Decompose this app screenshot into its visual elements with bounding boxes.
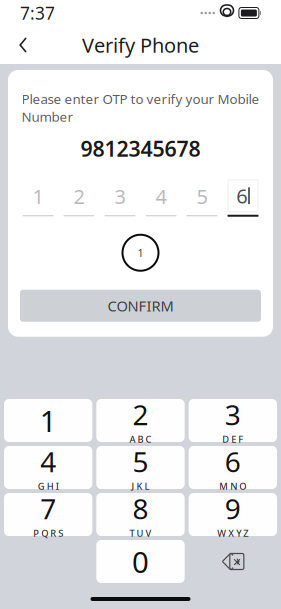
staticText: 3 [225, 396, 241, 433]
staticText: Verify Phone [82, 32, 199, 58]
staticText: 6 [225, 443, 241, 480]
staticText: J K L [131, 480, 149, 492]
staticText: 1 [137, 246, 143, 260]
button[interactable]: Back [12, 30, 34, 60]
staticText: 4 [155, 183, 166, 210]
staticText: D E F [222, 433, 243, 445]
button[interactable]: 0 [96, 540, 185, 583]
staticText: A B C [129, 433, 151, 445]
button[interactable]: 5 [96, 446, 185, 489]
staticText: T U V [129, 527, 151, 539]
button[interactable]: 7 [4, 493, 92, 536]
button[interactable]: CONFIRM [20, 290, 261, 322]
button[interactable]: Delete [189, 540, 277, 583]
staticText: 2 [132, 396, 148, 433]
button[interactable]: 4 [4, 446, 92, 489]
staticText: 5 [132, 443, 148, 480]
staticText: M N O [219, 480, 246, 492]
staticText: × [233, 552, 241, 571]
staticText: G H I [38, 480, 59, 492]
button[interactable]: 9 [189, 493, 277, 536]
button[interactable]: 2 [96, 399, 185, 442]
staticText: CONFIRM [107, 296, 173, 315]
staticText: 3 [114, 183, 125, 210]
button[interactable]: 6 [189, 446, 277, 489]
staticText: 1 [32, 183, 43, 210]
staticText: 0 [132, 542, 149, 581]
button[interactable]: 8 [96, 493, 185, 536]
staticText: W X Y Z [217, 527, 248, 539]
staticText: 7:37 [20, 1, 55, 24]
button[interactable]: 1 [4, 399, 92, 442]
staticText: 4 [40, 443, 56, 480]
staticText: 9 [225, 490, 241, 527]
staticText: 2 [73, 183, 84, 210]
staticText: Please enter OTP to verify your Mobile N… [21, 90, 259, 125]
staticText: 9812345678 [80, 134, 200, 163]
staticText: 7 [40, 490, 56, 527]
staticText: P Q R S [33, 527, 63, 539]
button[interactable]: 3 [189, 399, 277, 442]
staticText: 1 [40, 401, 57, 440]
staticText: 5 [196, 183, 207, 210]
staticText: 8 [132, 490, 148, 527]
staticText: 6 [236, 182, 247, 209]
